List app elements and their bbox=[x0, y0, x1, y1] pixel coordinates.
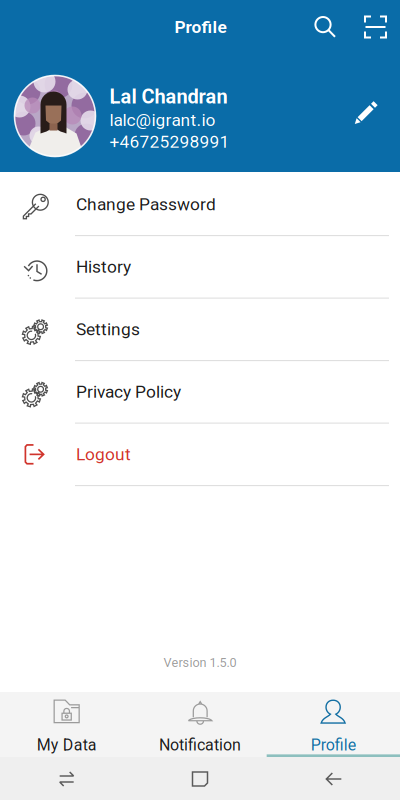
staticText: History bbox=[76, 257, 131, 277]
button[interactable]: Edit profile bbox=[344, 91, 388, 135]
staticText: lalc@igrant.io bbox=[109, 110, 215, 130]
button[interactable]: Home bbox=[133, 757, 267, 799]
staticText: Logout bbox=[76, 444, 131, 464]
button[interactable]: Recent apps bbox=[0, 757, 133, 799]
staticText: My Data bbox=[37, 736, 97, 754]
staticText: Privacy Policy bbox=[76, 382, 181, 402]
button[interactable]: Settings bbox=[0, 299, 400, 361]
button[interactable]: Notification bbox=[133, 692, 267, 757]
staticText: Change Password bbox=[76, 194, 216, 214]
button[interactable]: Back bbox=[267, 757, 400, 799]
button[interactable]: Change Password bbox=[0, 174, 400, 236]
staticText: Version 1.5.0 bbox=[163, 655, 236, 670]
staticText: Profile bbox=[174, 17, 226, 37]
button[interactable]: Privacy Policy bbox=[0, 361, 400, 424]
button[interactable]: Profile bbox=[267, 692, 400, 757]
button[interactable]: Logout bbox=[0, 424, 400, 486]
staticText: Lal Chandran bbox=[109, 85, 227, 108]
staticText: Settings bbox=[76, 319, 140, 339]
button[interactable]: Search bbox=[299, 4, 351, 50]
button[interactable]: My Data bbox=[0, 692, 133, 757]
button[interactable]: History bbox=[0, 236, 400, 299]
staticText: +46725298991 bbox=[109, 132, 229, 152]
button[interactable]: Scan code bbox=[351, 4, 400, 50]
staticText: Profile bbox=[311, 736, 356, 754]
staticText: Notification bbox=[159, 736, 241, 754]
